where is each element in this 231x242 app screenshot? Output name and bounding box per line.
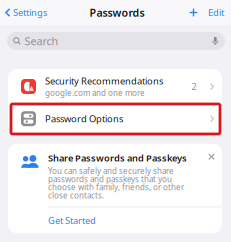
staticText: Edit (208, 6, 224, 19)
button[interactable]: Get Started (8, 207, 222, 233)
button[interactable]: Search (7, 32, 225, 50)
button[interactable]: Settings (0, 0, 51, 25)
button[interactable]: Security Recommendations (8, 69, 222, 104)
button[interactable]: Add Password (183, 0, 204, 25)
staticText: Search (24, 34, 58, 48)
button[interactable]: Password Options (8, 105, 222, 133)
staticText: Password Options (45, 112, 123, 125)
staticText: Share Passwords and Passkeys (48, 152, 187, 164)
staticText: Get Started (48, 214, 96, 226)
staticText: Security Recommendations (45, 75, 163, 87)
button[interactable]: Dismiss (208, 152, 216, 160)
staticText: Settings (13, 6, 47, 19)
staticText: google.com and one more (45, 88, 145, 98)
staticText: 2 (192, 80, 197, 93)
staticText: You can safely and securely share passwo… (48, 166, 184, 201)
button[interactable]: Edit (204, 0, 231, 25)
staticText: Passwords (89, 5, 144, 20)
